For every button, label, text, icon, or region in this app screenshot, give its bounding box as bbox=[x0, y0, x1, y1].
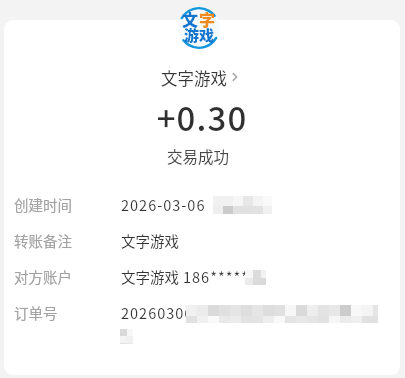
staticText: 186***** bbox=[183, 266, 249, 287]
staticText: 游戏 bbox=[184, 24, 215, 46]
staticText: 文字游戏 bbox=[121, 266, 183, 287]
staticText: 字 bbox=[199, 7, 216, 30]
staticText: 文字游戏 bbox=[161, 66, 227, 90]
staticText: 交易成功 bbox=[4, 145, 396, 167]
staticText: 对方账户 bbox=[14, 266, 72, 287]
staticText: 创建时间 bbox=[14, 194, 72, 215]
staticText: 文 bbox=[182, 7, 199, 30]
button[interactable]: 文字游戏 bbox=[156, 64, 245, 92]
staticText: 订单号 bbox=[14, 302, 58, 323]
staticText: +0.30 bbox=[4, 93, 400, 141]
staticText: 20260306 bbox=[121, 302, 194, 323]
staticText: 2026-03-06 bbox=[121, 194, 206, 215]
button[interactable]: 文字游戏 头像 bbox=[177, 6, 221, 50]
staticText: 转账备注 bbox=[14, 230, 72, 251]
staticText: 文字游戏 bbox=[121, 230, 179, 251]
